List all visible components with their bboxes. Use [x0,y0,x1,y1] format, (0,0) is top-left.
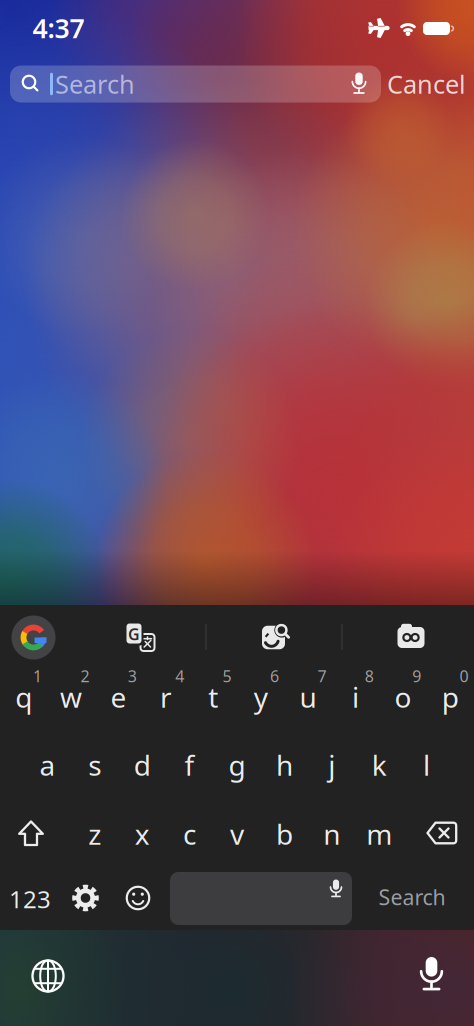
button[interactable]: Image search [258,621,292,653]
button[interactable]: Delete [426,821,458,845]
staticText: G [128,623,140,645]
button[interactable]: d [119,733,166,797]
button[interactable]: i [332,665,379,729]
button[interactable]: Shift [18,820,44,846]
button[interactable]: r [142,665,189,729]
staticText: z [88,815,101,853]
staticText: n [323,815,340,853]
button[interactable]: h [261,733,308,797]
button[interactable]: Emoji [125,885,151,911]
button[interactable]: 123 [2,872,58,925]
staticText: 4:37 [32,10,84,46]
button[interactable]: l [403,733,450,797]
staticText: m [366,815,392,853]
button[interactable]: p [427,665,474,729]
button[interactable]: z [71,802,118,866]
staticText: 123 [9,883,51,915]
button[interactable]: Voice search [351,72,367,95]
button[interactable]: Space [170,872,352,925]
button[interactable]: GIF camera [395,624,427,650]
staticText: 4 [175,665,184,687]
staticText: a [39,746,55,784]
button[interactable]: m [356,802,403,866]
button[interactable]: s [71,733,118,797]
button[interactable]: Search [367,870,457,923]
staticText: v [230,815,244,853]
staticText: j [328,746,335,784]
button[interactable]: t [190,665,237,729]
staticText: 1 [33,665,42,687]
button[interactable]: Google [11,615,55,659]
button[interactable]: b [261,802,308,866]
staticText: y [254,678,268,716]
button[interactable]: w [48,665,95,729]
staticText: u [300,678,317,716]
button[interactable]: Translate [124,621,156,653]
staticText: 6 [270,665,279,687]
button[interactable]: e [95,665,142,729]
staticText: 2 [80,665,89,687]
staticText: Search [378,883,445,911]
button[interactable]: u [285,665,332,729]
staticText: t [208,678,218,716]
button[interactable]: Dictation [419,957,444,993]
staticText: Cancel [387,67,466,101]
staticText: f [185,746,195,784]
button[interactable]: c [166,802,213,866]
button[interactable]: k [356,733,403,797]
staticText: s [88,746,101,784]
staticText: g [228,746,245,784]
staticText: 0 [460,665,469,687]
button[interactable]: n [308,802,355,866]
staticText: b [276,815,293,853]
staticText: 3 [128,665,137,687]
button[interactable]: v [213,802,260,866]
button[interactable]: y [237,665,284,729]
button[interactable]: j [308,733,355,797]
staticText: h [276,746,293,784]
staticText: w [60,678,82,716]
staticText: x [135,815,150,853]
button[interactable]: q [0,665,47,729]
staticText: Search [55,67,135,101]
button[interactable]: a [24,733,71,797]
staticText: r [160,678,172,716]
button[interactable]: Cancel [366,67,466,101]
staticText: o [394,678,411,716]
button[interactable]: Keyboard settings [70,883,100,913]
button[interactable]: g [213,733,260,797]
staticText: 5 [223,665,232,687]
staticText: i [352,678,359,716]
staticText: c [183,815,196,853]
staticText: l [423,746,430,784]
button[interactable]: f [166,733,213,797]
button[interactable]: Voice typing [329,879,343,898]
staticText: k [372,746,387,784]
staticText: q [15,678,32,716]
staticText: 7 [317,665,326,687]
staticText: 8 [365,665,374,687]
button[interactable]: Search [10,65,381,102]
staticText: e [110,678,126,716]
staticText: d [134,746,151,784]
staticText: 9 [412,665,421,687]
staticText: p [442,678,459,716]
button[interactable]: o [379,665,426,729]
button[interactable]: Next keyboard [31,959,65,993]
button[interactable]: x [119,802,166,866]
